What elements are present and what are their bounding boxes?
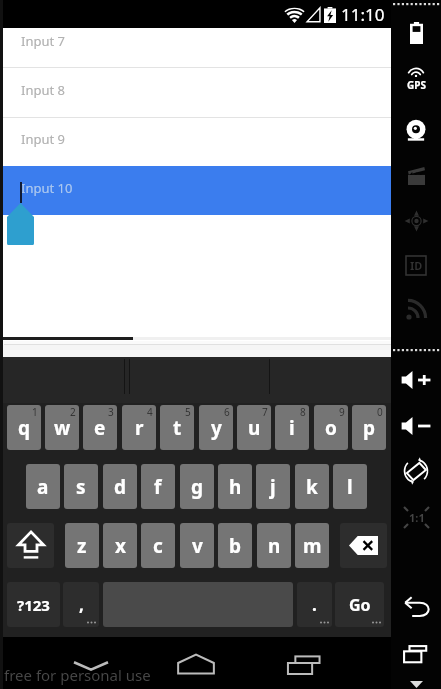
button[interactable]: Delete (340, 523, 387, 568)
staticText: w (54, 415, 71, 441)
button[interactable]: j (256, 464, 290, 509)
staticText: 8 (300, 405, 306, 419)
other: Cellular (406, 300, 426, 320)
button[interactable]: More controls (404, 678, 428, 689)
button[interactable]: . (297, 582, 332, 627)
staticText: u (248, 415, 261, 441)
button[interactable]: h (218, 464, 252, 509)
staticText: Input 8 (21, 81, 65, 99)
button[interactable]: i (275, 405, 309, 450)
staticText: 0 (377, 405, 383, 419)
button[interactable]: Home (176, 653, 216, 675)
button[interactable]: Input 7 (3, 28, 391, 68)
button[interactable]: Input 8 (3, 68, 391, 117)
button[interactable]: ?123 (7, 582, 60, 627)
button[interactable]: a (26, 464, 60, 509)
other: Location (400, 68, 432, 92)
button[interactable]: g (180, 464, 214, 509)
button[interactable]: t (160, 405, 194, 450)
button[interactable]: k (295, 464, 329, 509)
button[interactable]: Zoom 1 to 1 (394, 500, 438, 534)
button[interactable]: Shift (7, 523, 54, 568)
staticText: c (153, 533, 163, 559)
button[interactable]: Volume up (394, 363, 438, 397)
button[interactable]: Rotate (394, 454, 438, 488)
staticText: z (77, 533, 87, 559)
button[interactable]: r (122, 405, 156, 450)
button[interactable]: o (314, 405, 348, 450)
button[interactable]: Input 10 (3, 166, 391, 215)
other: Zoom 1 to 1 (403, 506, 430, 529)
button[interactable]: z (65, 523, 99, 568)
other: Directional pad (405, 211, 428, 231)
staticText: GPS (407, 78, 426, 92)
button[interactable]: Camera (394, 114, 438, 148)
staticText: Input 7 (21, 32, 65, 50)
staticText: Input 10 (21, 179, 73, 197)
staticText: t (173, 415, 182, 441)
button[interactable]: Go (335, 582, 384, 627)
button[interactable]: Hide keyboard (70, 655, 112, 677)
staticText: m (303, 533, 322, 559)
staticText: 7 (262, 405, 268, 419)
button[interactable]: c (141, 523, 175, 568)
staticText: . (312, 593, 317, 616)
other: Text cursor handle (7, 203, 34, 245)
button[interactable]: Location (394, 63, 438, 97)
button[interactable]: n (257, 523, 291, 568)
staticText: a (37, 474, 49, 500)
button[interactable]: b (218, 523, 252, 568)
button[interactable]: Recent apps (284, 653, 326, 676)
button[interactable]: Directional pad (394, 204, 438, 238)
staticText: k (306, 474, 318, 500)
staticText: v (192, 533, 203, 559)
staticText: free for personal use (4, 665, 151, 685)
staticText: 11:10 (341, 3, 385, 26)
button[interactable]: Back (394, 589, 438, 623)
staticText: o (325, 415, 337, 441)
staticText: g (191, 474, 204, 500)
staticText: q (18, 415, 31, 441)
button[interactable]: u (237, 405, 271, 450)
staticText: ?123 (17, 595, 50, 615)
button[interactable]: x (103, 523, 137, 568)
button[interactable]: s (64, 464, 98, 509)
button[interactable]: l (333, 464, 367, 509)
staticText: Go (349, 594, 371, 616)
button[interactable]: Cellular (394, 293, 438, 327)
button[interactable]: f (141, 464, 175, 509)
button[interactable]: Battery (394, 16, 438, 50)
button[interactable]: p (352, 405, 386, 450)
staticText: 6 (224, 405, 230, 419)
staticText: 5 (185, 405, 191, 419)
button[interactable]: Device ID (394, 248, 438, 282)
staticText: b (229, 533, 242, 559)
button[interactable]: v (180, 523, 214, 568)
button[interactable]: e (83, 405, 117, 450)
other: Record screen (408, 167, 425, 185)
other: Camera (405, 120, 427, 142)
button[interactable]: y (199, 405, 233, 450)
staticText: r (135, 415, 144, 441)
button[interactable]: , (63, 582, 99, 627)
staticText: n (268, 533, 281, 559)
button[interactable]: Input 9 (3, 117, 391, 166)
button[interactable]: q (7, 405, 41, 450)
staticText: e (94, 415, 106, 441)
staticText: 2 (70, 405, 76, 419)
staticText: f (154, 474, 162, 500)
other: Recents (403, 644, 430, 665)
staticText: Input 9 (21, 130, 65, 148)
button[interactable]: Record screen (394, 159, 438, 193)
button[interactable]: m (295, 523, 329, 568)
button[interactable]: w (45, 405, 79, 450)
button[interactable]: d (103, 464, 137, 509)
button[interactable]: Recents (394, 637, 438, 671)
staticText: l (347, 474, 353, 500)
staticText: x (115, 533, 126, 559)
staticText: 1 (32, 405, 38, 419)
other: Device ID (405, 255, 427, 276)
button[interactable]: Volume down (394, 409, 438, 443)
other: Battery (410, 22, 423, 44)
